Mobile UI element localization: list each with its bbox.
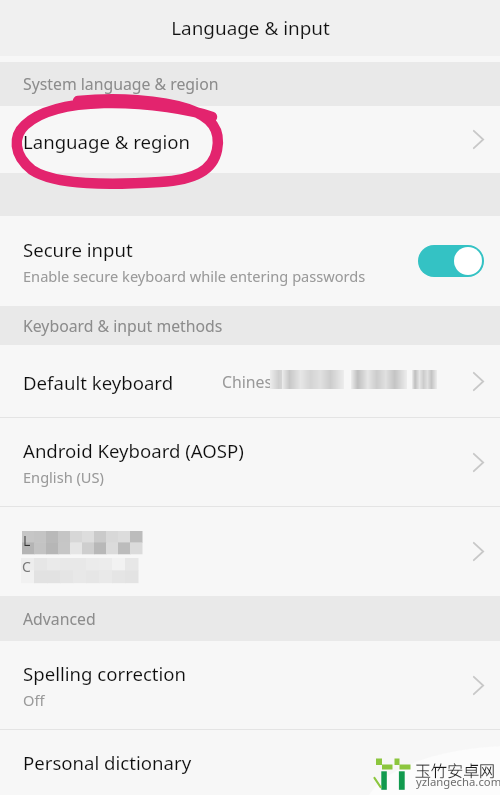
button[interactable]: L: [0, 507, 500, 596]
staticText: Enable secure keyboard while entering pa…: [23, 266, 366, 286]
staticText: Android Keyboard (AOSP): [23, 438, 244, 463]
staticText: Chinese: [222, 371, 281, 393]
staticText: Secure input: [23, 237, 133, 262]
staticText: Language & input: [171, 15, 330, 41]
staticText: 玉竹安卓网: [415, 758, 496, 781]
button[interactable]: Spelling correction: [0, 641, 500, 729]
button[interactable]: Language & region: [0, 106, 500, 173]
button[interactable]: Personal dictionary: [0, 730, 500, 795]
staticText: yzlangecha.com: [416, 774, 500, 789]
staticText: L: [23, 531, 31, 550]
staticText: Spelling correction: [23, 661, 187, 686]
staticText: Advanced: [23, 608, 96, 630]
staticText: Language & region: [23, 129, 190, 154]
staticText: Personal dictionary: [23, 750, 192, 775]
button[interactable]: Default keyboard: [0, 345, 500, 417]
staticText: English (US): [23, 467, 104, 487]
button[interactable]: Secure input: [0, 216, 500, 306]
button[interactable]: Secure input toggle: [418, 245, 484, 277]
staticText: Off: [23, 690, 45, 710]
staticText: Keyboard & input methods: [23, 315, 223, 337]
button[interactable]: Android Keyboard (AOSP): [0, 418, 500, 506]
staticText: System language & region: [23, 73, 219, 95]
staticText: Default keyboard: [23, 370, 174, 395]
staticText: C: [22, 557, 31, 576]
